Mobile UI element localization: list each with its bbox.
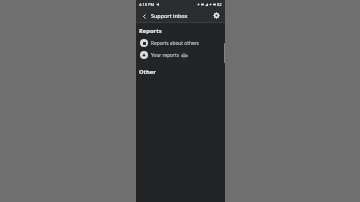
staticText: Reports xyxy=(139,27,162,35)
staticText: Reports about others xyxy=(151,40,199,47)
button[interactable]: Your reports xyxy=(136,49,225,61)
staticText: Your reports xyxy=(151,52,180,59)
staticText: Other xyxy=(139,68,156,76)
staticText: 82 xyxy=(217,2,222,7)
button[interactable]: Settings xyxy=(211,10,222,21)
staticText: 4:18 PM xyxy=(139,2,155,7)
staticText: Support inbox xyxy=(151,12,188,19)
button[interactable]: Back xyxy=(139,11,149,21)
button[interactable]: Reports about others xyxy=(136,37,225,49)
